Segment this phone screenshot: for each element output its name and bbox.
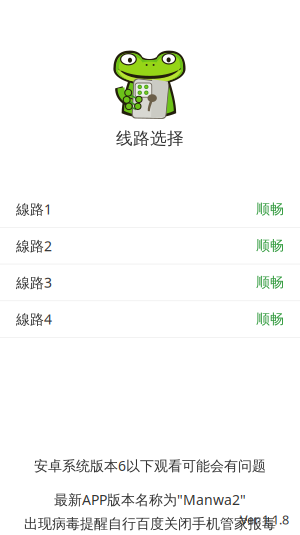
staticText: 顺畅 bbox=[256, 274, 284, 291]
staticText: 顺畅 bbox=[256, 200, 284, 218]
button[interactable]: 線路2 bbox=[0, 228, 300, 264]
button[interactable]: 線路1 bbox=[0, 191, 300, 228]
staticText: 線路3 bbox=[16, 273, 52, 292]
staticText: 安卓系统版本6以下观看可能会有问题 bbox=[34, 456, 266, 475]
staticText: 顺畅 bbox=[256, 310, 284, 328]
staticText: 線路2 bbox=[16, 236, 52, 255]
staticText: 顺畅 bbox=[256, 237, 284, 254]
staticText: 出现病毒提醒自行百度关闭手机管家报毒 bbox=[24, 515, 276, 533]
button[interactable]: 線路3 bbox=[0, 264, 300, 301]
staticText: 线路选择 bbox=[116, 128, 184, 149]
staticText: 最新APP版本名称为"Manwa2" bbox=[54, 490, 246, 509]
button[interactable]: 線路4 bbox=[0, 301, 300, 338]
staticText: 線路4 bbox=[16, 310, 52, 329]
staticText: Ver 1.1.8 bbox=[240, 511, 289, 528]
staticText: 線路1 bbox=[16, 199, 52, 219]
